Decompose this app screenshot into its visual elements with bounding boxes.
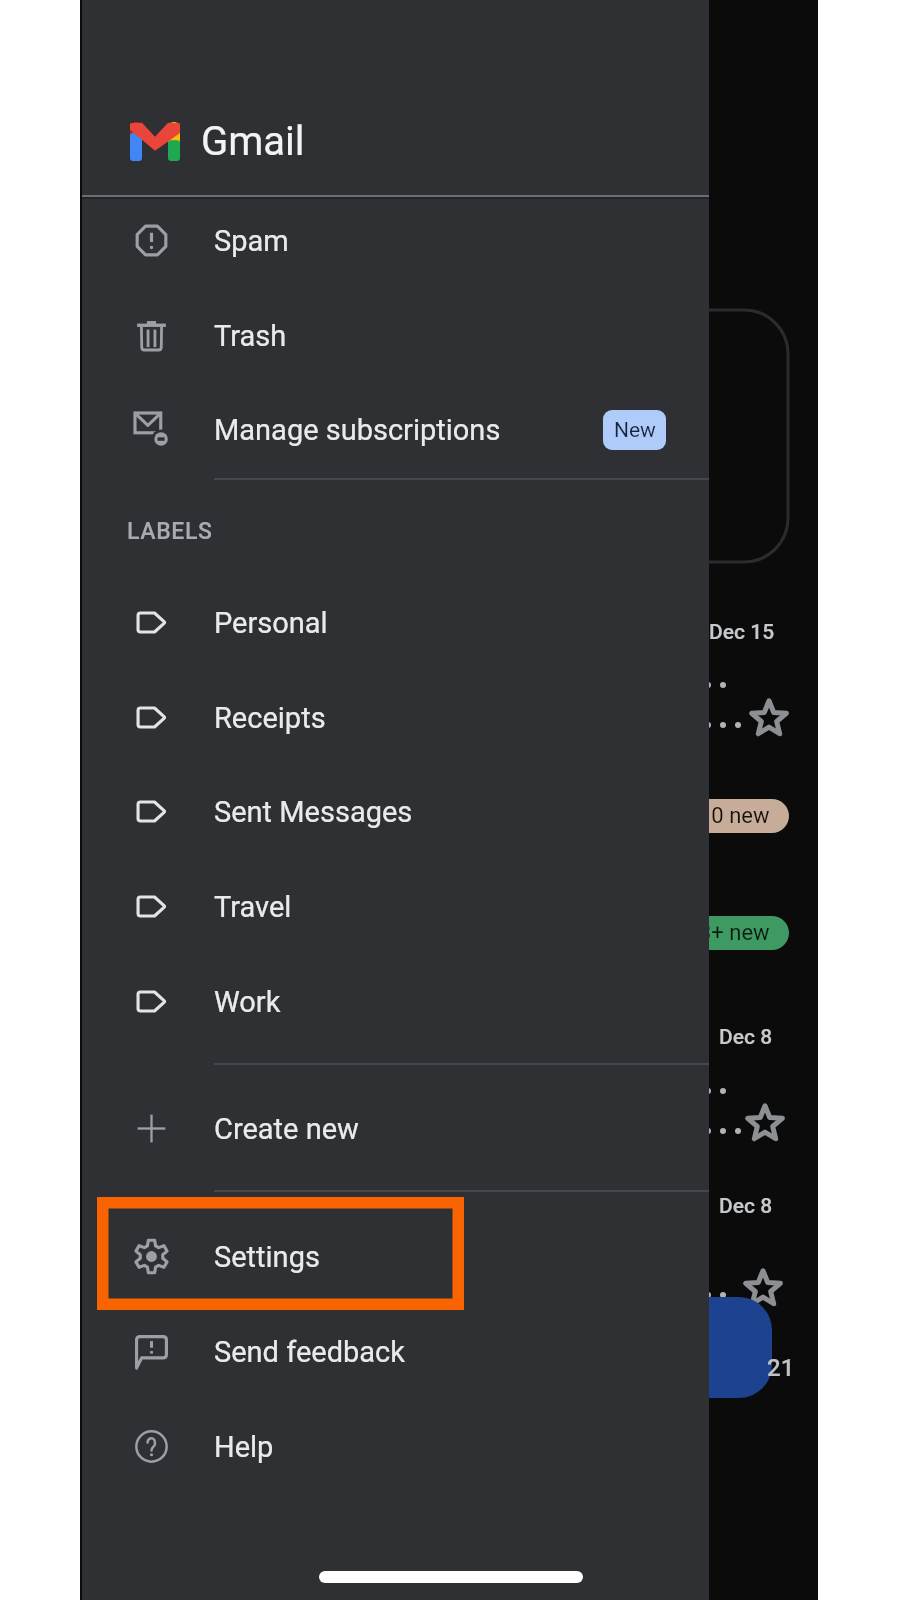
button[interactable]: Gmail [130,118,305,165]
staticText: Sent Messages [214,795,413,829]
staticText: Settings [214,1240,320,1274]
staticText: Personal [214,606,328,640]
button[interactable]: Star conversation [750,700,788,738]
button[interactable]: Travel [82,859,709,954]
staticText: Help [214,1430,274,1464]
staticText: Receipts [214,701,326,735]
staticText: Dec 8 [719,1025,773,1050]
button[interactable]: New [603,410,666,450]
button[interactable]: Manage subscriptions [82,382,709,477]
button[interactable]: Send feedback [82,1304,709,1399]
staticText: LABELS [127,518,213,545]
staticText: Dec 8 [719,1194,773,1219]
staticText: New [614,418,656,443]
staticText: Gmail [201,118,305,165]
staticText: Spam [214,224,289,258]
button[interactable]: Sent Messages [82,764,709,859]
staticText: 21 [767,1354,795,1382]
staticText: Work [214,985,281,1019]
button[interactable]: Create new [82,1081,709,1176]
button[interactable]: Spam [82,193,709,288]
button[interactable]: Compose [600,1297,772,1398]
staticText: Create new [214,1112,359,1146]
button[interactable]: Receipts [82,670,709,765]
button[interactable]: Personal [82,575,709,670]
button[interactable]: Help [82,1399,709,1494]
staticText: Send feedback [214,1335,405,1369]
staticText: Dec 15 [709,620,775,645]
staticText: Manage subscriptions [214,413,501,447]
staticText: Trash [214,319,287,353]
button[interactable]: Settings [82,1209,709,1304]
staticText: 10 new [699,803,770,829]
staticText: 3+ new [699,920,770,946]
button[interactable]: Star conversation [746,1105,784,1143]
button[interactable]: Star conversation [744,1270,782,1308]
button[interactable]: Work [82,954,709,1049]
staticText: Travel [214,890,292,924]
button[interactable]: Trash [82,288,709,383]
